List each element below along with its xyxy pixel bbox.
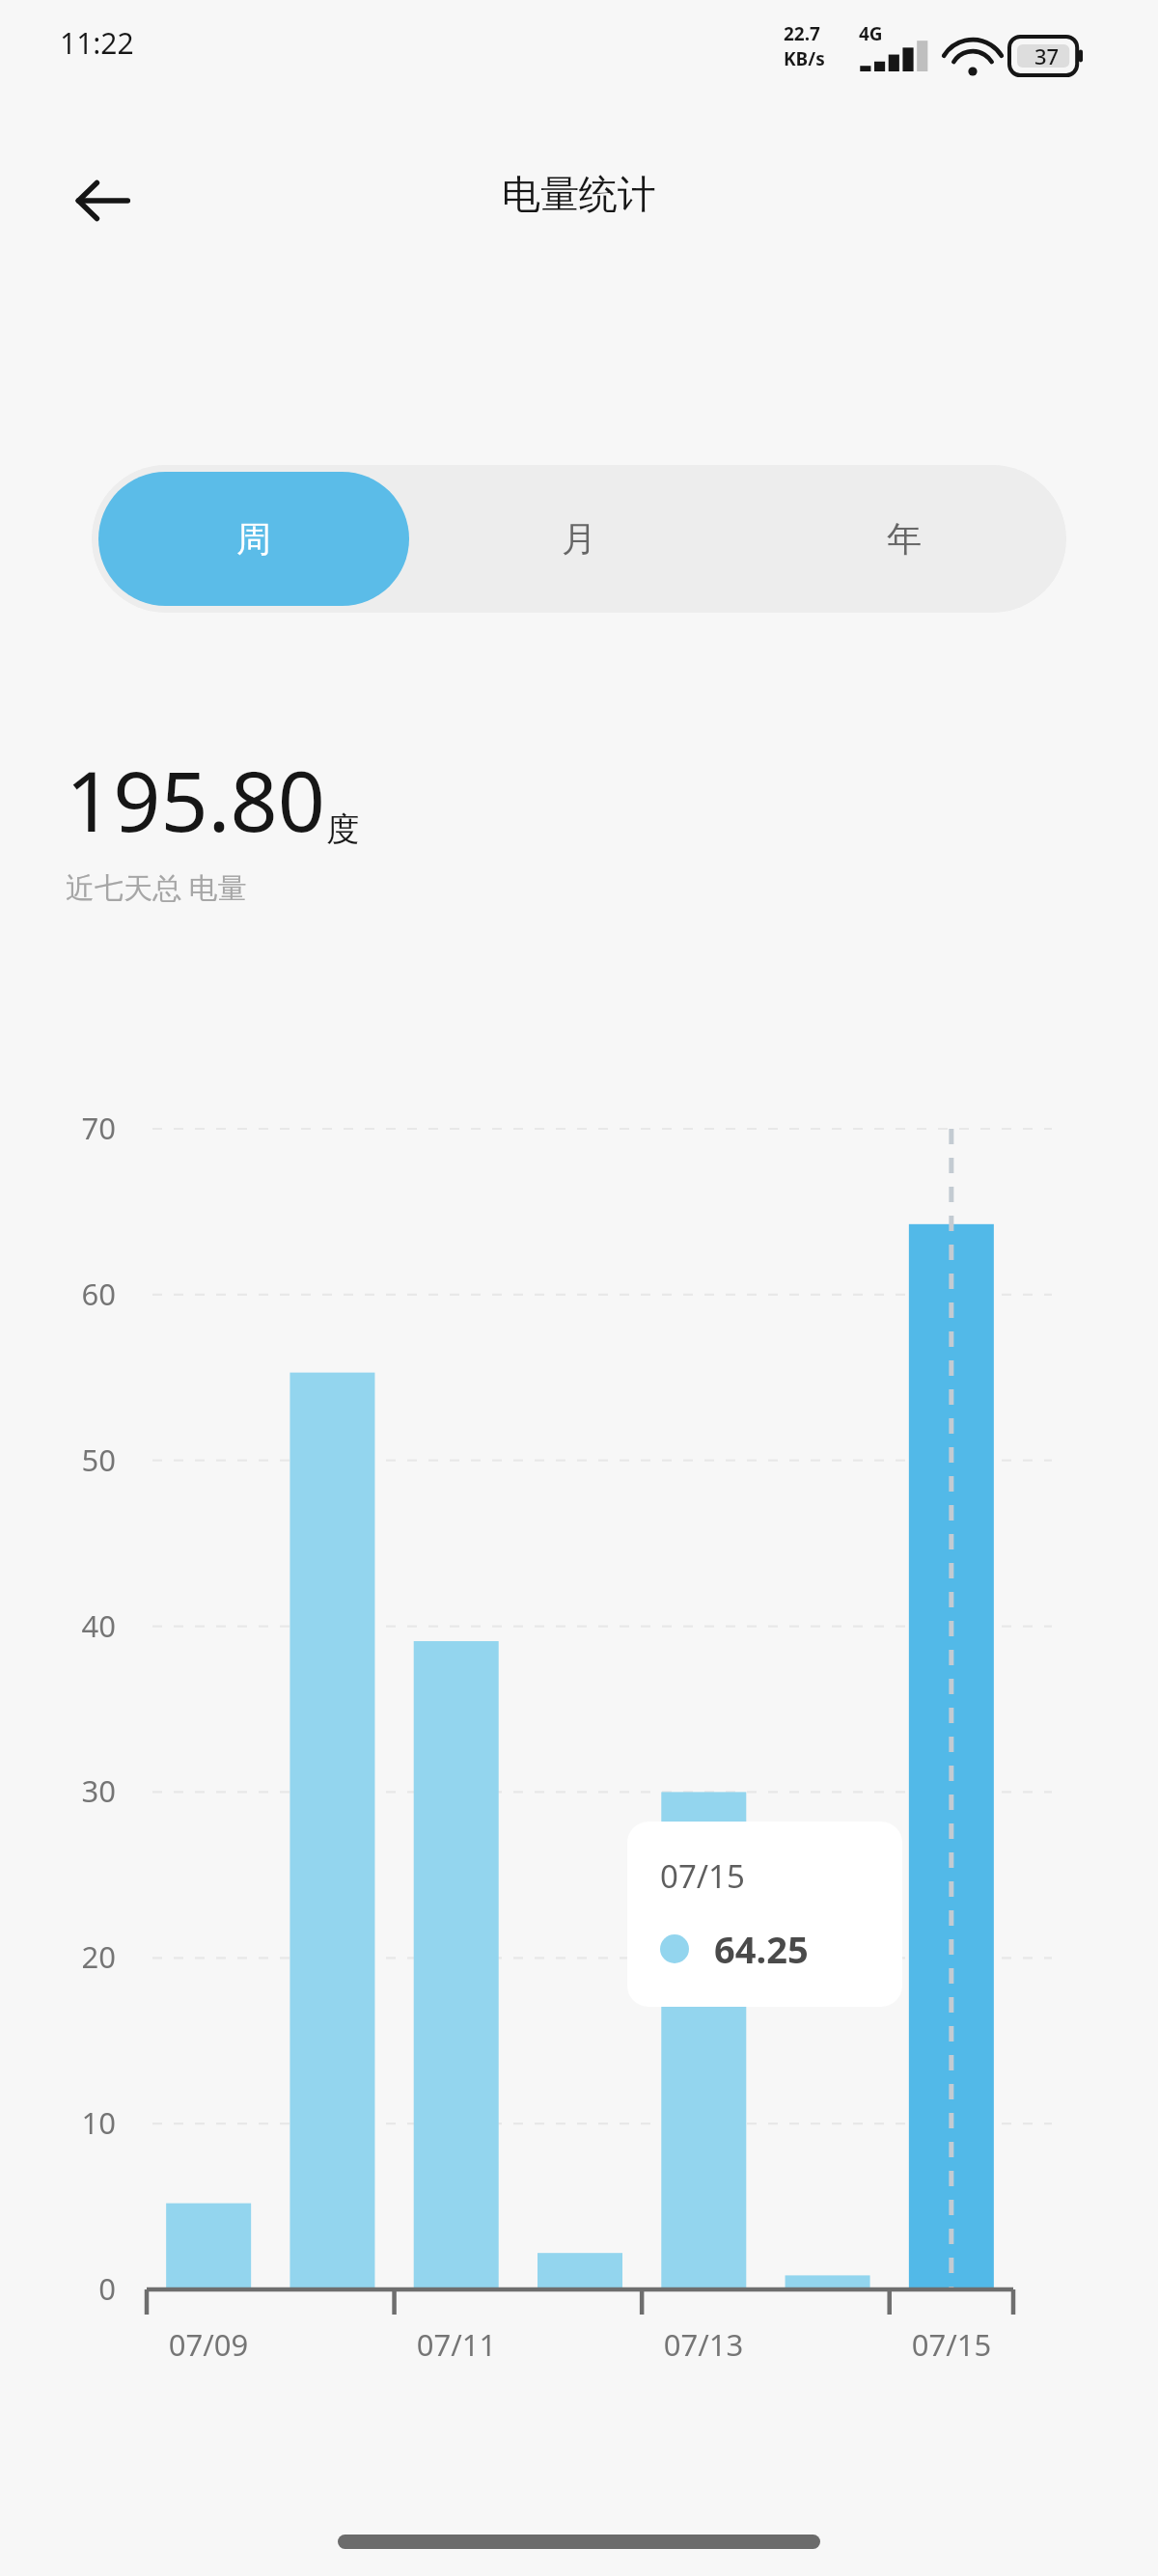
staticText: 近七天总 电量: [66, 867, 247, 907]
staticText: 22.7: [784, 21, 820, 46]
button[interactable]: 年: [741, 465, 1066, 613]
staticText: 4G: [859, 21, 883, 46]
staticText: KB/s: [784, 46, 825, 71]
staticText: 195.80: [66, 743, 326, 856]
staticText: 60: [35, 1274, 116, 1314]
button[interactable]: Back: [62, 160, 143, 241]
staticText: 周: [236, 517, 271, 561]
staticText: 37: [1034, 41, 1060, 70]
staticText: 度: [326, 808, 359, 850]
staticText: 0: [35, 2268, 116, 2309]
staticText: 07/11: [370, 2324, 543, 2365]
staticText: 07/15: [660, 1854, 745, 1898]
button[interactable]: 07/15: [627, 1822, 902, 2007]
staticText: 11:22: [60, 23, 134, 63]
staticText: 电量统计: [0, 170, 1158, 218]
staticText: 50: [35, 1439, 116, 1480]
staticText: 30: [35, 1770, 116, 1811]
staticText: 10: [35, 2102, 116, 2143]
staticText: 年: [887, 517, 922, 561]
staticText: 07/13: [617, 2324, 790, 2365]
staticText: 40: [35, 1605, 116, 1646]
button[interactable]: 周: [98, 472, 409, 606]
staticText: 20: [35, 1936, 116, 1977]
staticText: 70: [35, 1108, 116, 1148]
staticText: 64.25: [714, 1924, 809, 1974]
staticText: 07/15: [865, 2324, 1038, 2365]
staticText: 07/09: [122, 2324, 295, 2365]
button[interactable]: 月: [416, 465, 741, 613]
staticText: 月: [562, 517, 596, 561]
